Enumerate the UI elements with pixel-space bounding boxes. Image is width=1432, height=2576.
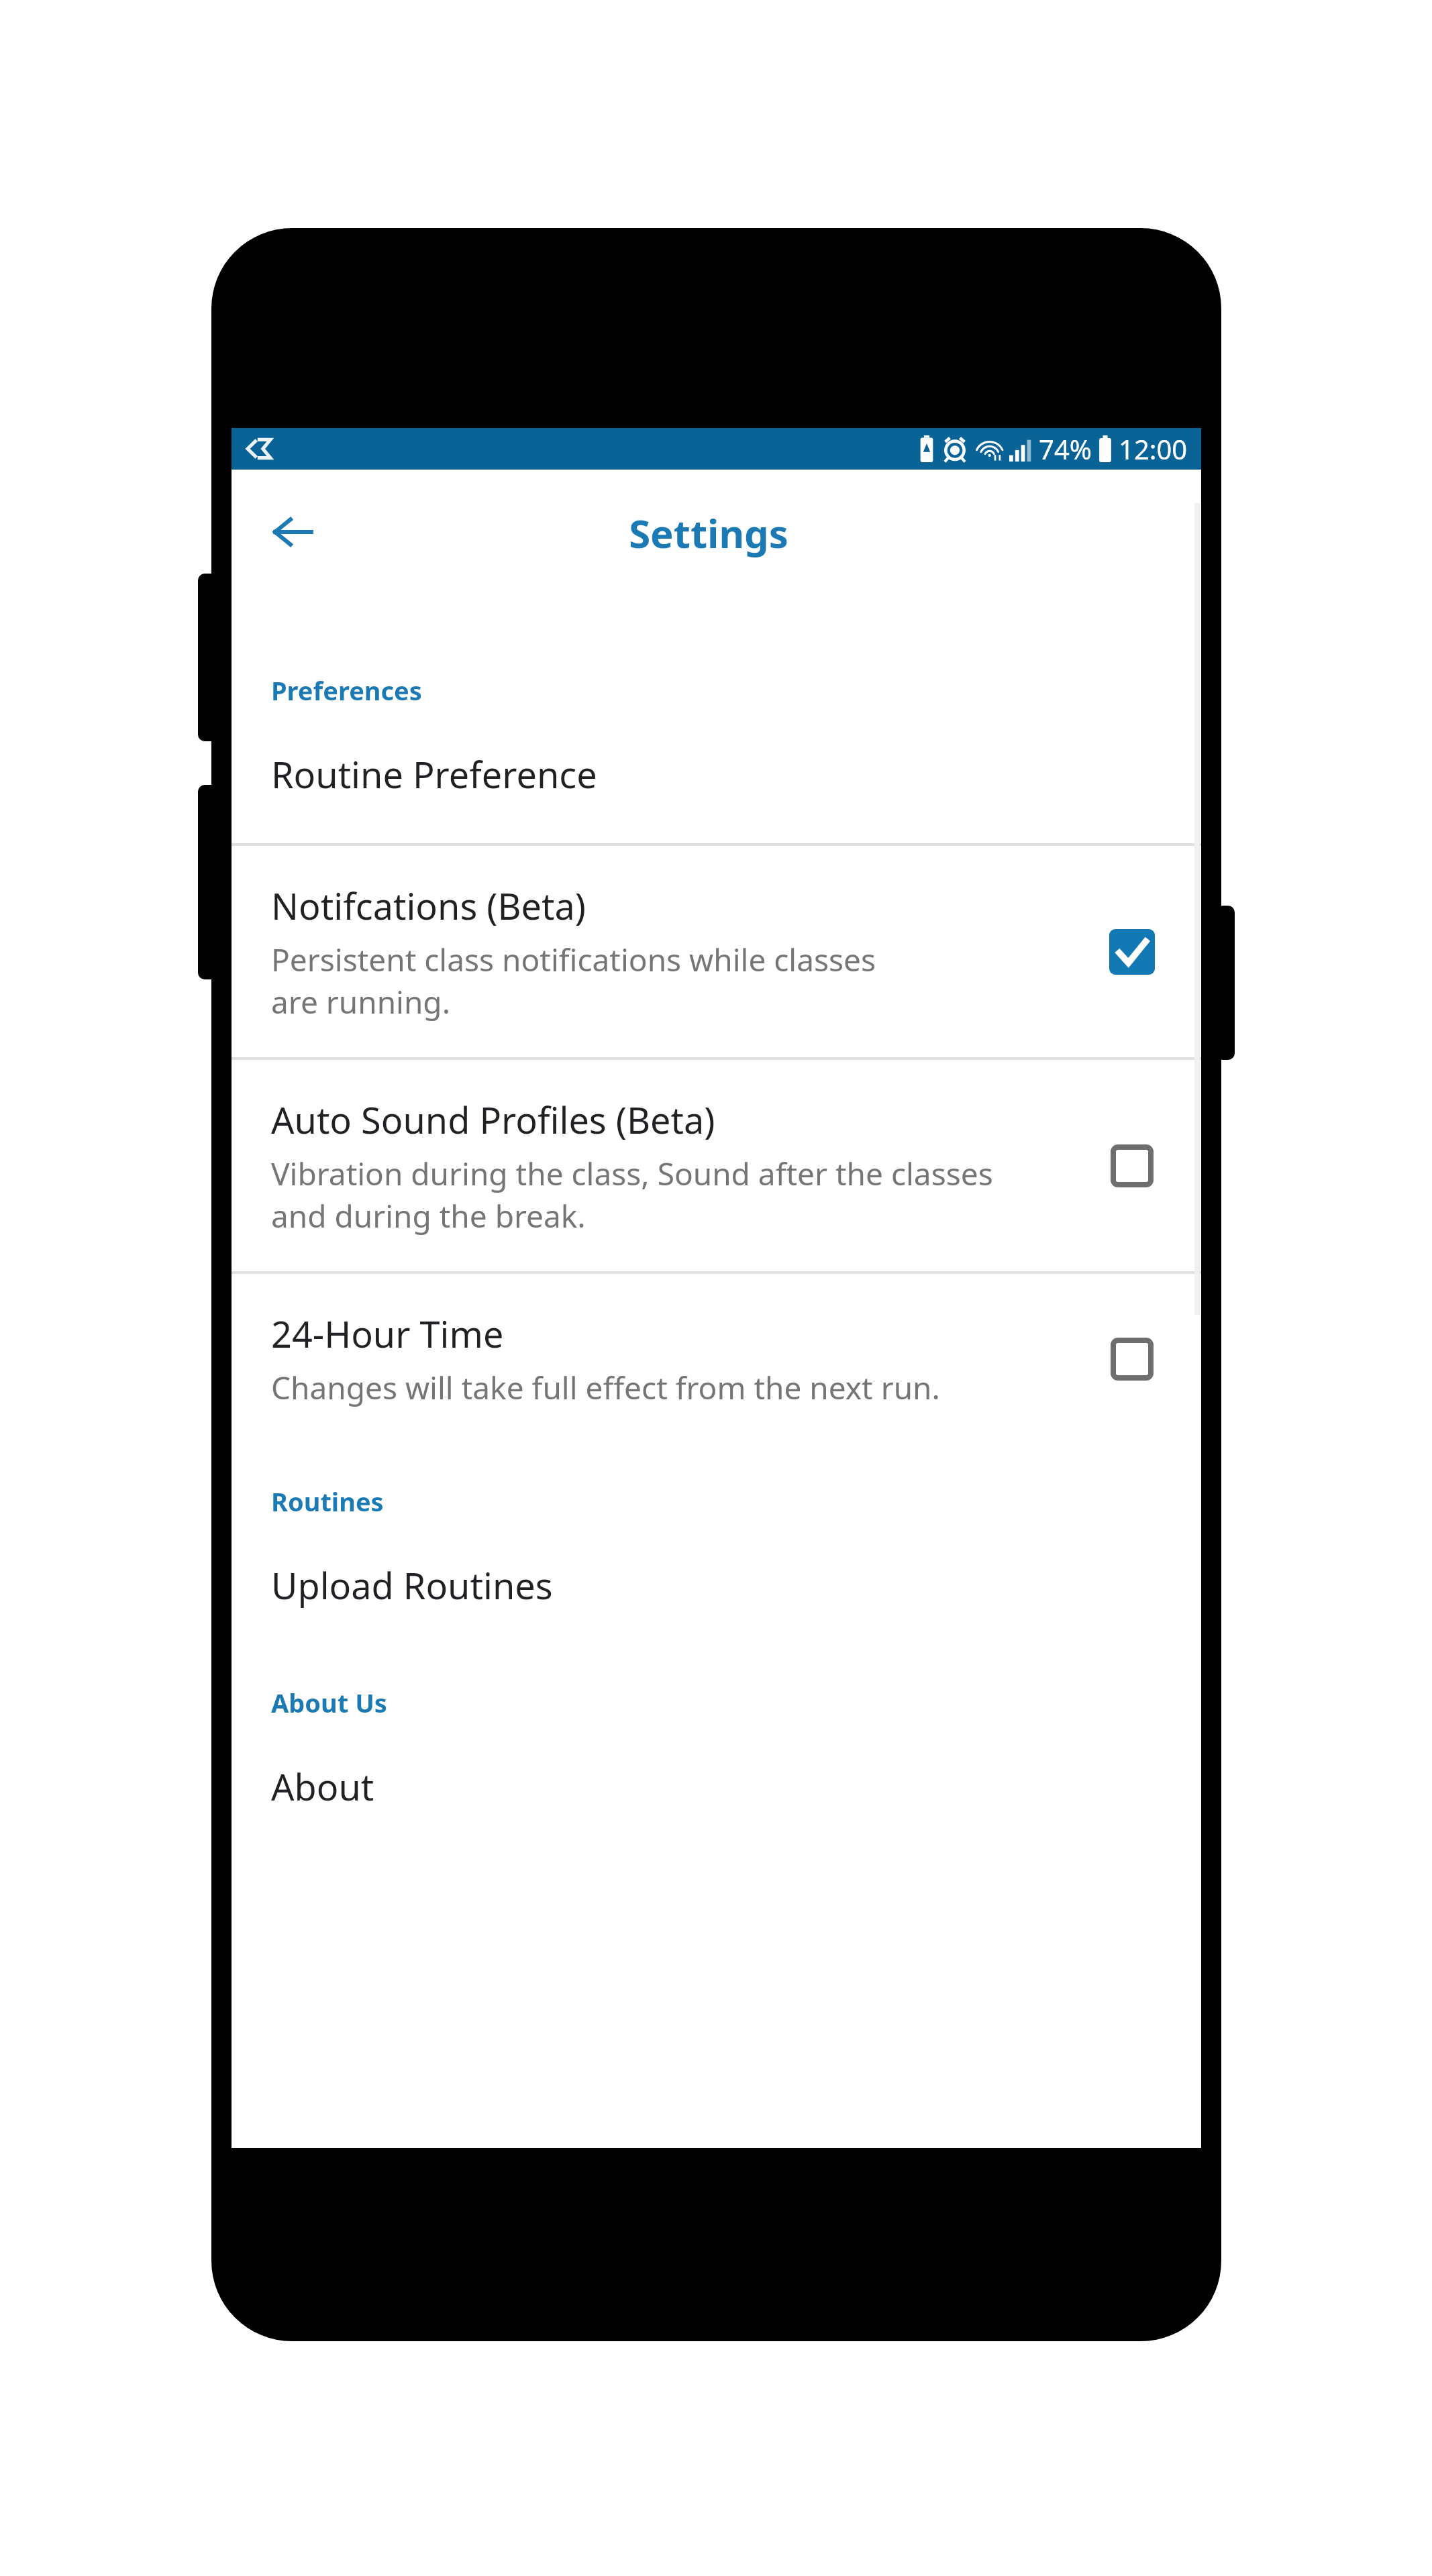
staticText: 24-Hour Time xyxy=(271,1309,504,1358)
button[interactable]: Notifcations (Beta) xyxy=(232,846,1201,1057)
staticText: Settings xyxy=(629,506,788,559)
staticText: Persistent class notifications while cla… xyxy=(271,938,876,1022)
button[interactable]: 24-Hour Time xyxy=(232,1274,1201,1444)
staticText: Changes will take full effect from the n… xyxy=(271,1366,940,1409)
staticText: Upload Routines xyxy=(271,1560,553,1610)
staticText: Auto Sound Profiles (Beta) xyxy=(271,1095,715,1144)
button[interactable]: Auto Sound Profiles (Beta) xyxy=(232,1060,1201,1271)
staticText: 74% xyxy=(1039,431,1092,467)
staticText: Routine Preference xyxy=(271,749,597,799)
button[interactable]: Back xyxy=(256,495,329,569)
staticText: Notifcations (Beta) xyxy=(271,881,586,930)
staticText: Vibration during the class, Sound after … xyxy=(271,1152,993,1236)
staticText: Preferences xyxy=(271,673,1201,708)
button[interactable]: Upload Routines xyxy=(232,1519,1201,1610)
staticText: 12:00 xyxy=(1119,431,1188,467)
button[interactable]: About xyxy=(232,1720,1201,1811)
button[interactable]: Routine Preference xyxy=(232,708,1201,843)
staticText: About Us xyxy=(271,1685,1201,1720)
staticText: About xyxy=(271,1762,374,1811)
staticText: Routines xyxy=(271,1484,1201,1519)
